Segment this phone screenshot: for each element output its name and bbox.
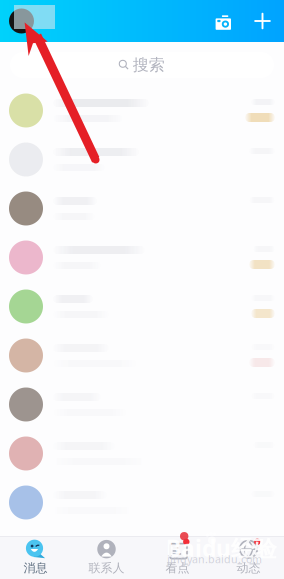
button[interactable]: Profile [9, 8, 34, 33]
button[interactable]: Camera [216, 14, 231, 28]
staticText: jingyan.baidu.com [167, 552, 262, 566]
staticText: Baidu经验 [166, 533, 277, 563]
button[interactable] [0, 331, 284, 380]
button[interactable] [0, 135, 284, 184]
staticText: 消息 [23, 561, 47, 575]
button[interactable]: Add [254, 12, 271, 29]
button[interactable]: 看点 [142, 536, 213, 579]
staticText: 联系人 [88, 561, 124, 575]
button[interactable] [0, 86, 284, 135]
button[interactable]: 动态 [213, 536, 284, 579]
staticText: 动态 [236, 561, 260, 575]
button[interactable]: 消息 [0, 536, 71, 579]
button[interactable] [0, 380, 284, 429]
button[interactable] [0, 478, 284, 527]
button[interactable] [0, 184, 284, 233]
staticText: 看点 [165, 561, 189, 575]
button[interactable] [0, 429, 284, 478]
button[interactable]: 联系人 [71, 536, 142, 579]
button[interactable]: 搜索 [10, 52, 274, 78]
button[interactable] [0, 233, 284, 282]
button[interactable] [0, 282, 284, 331]
staticText: 搜索 [133, 55, 165, 75]
